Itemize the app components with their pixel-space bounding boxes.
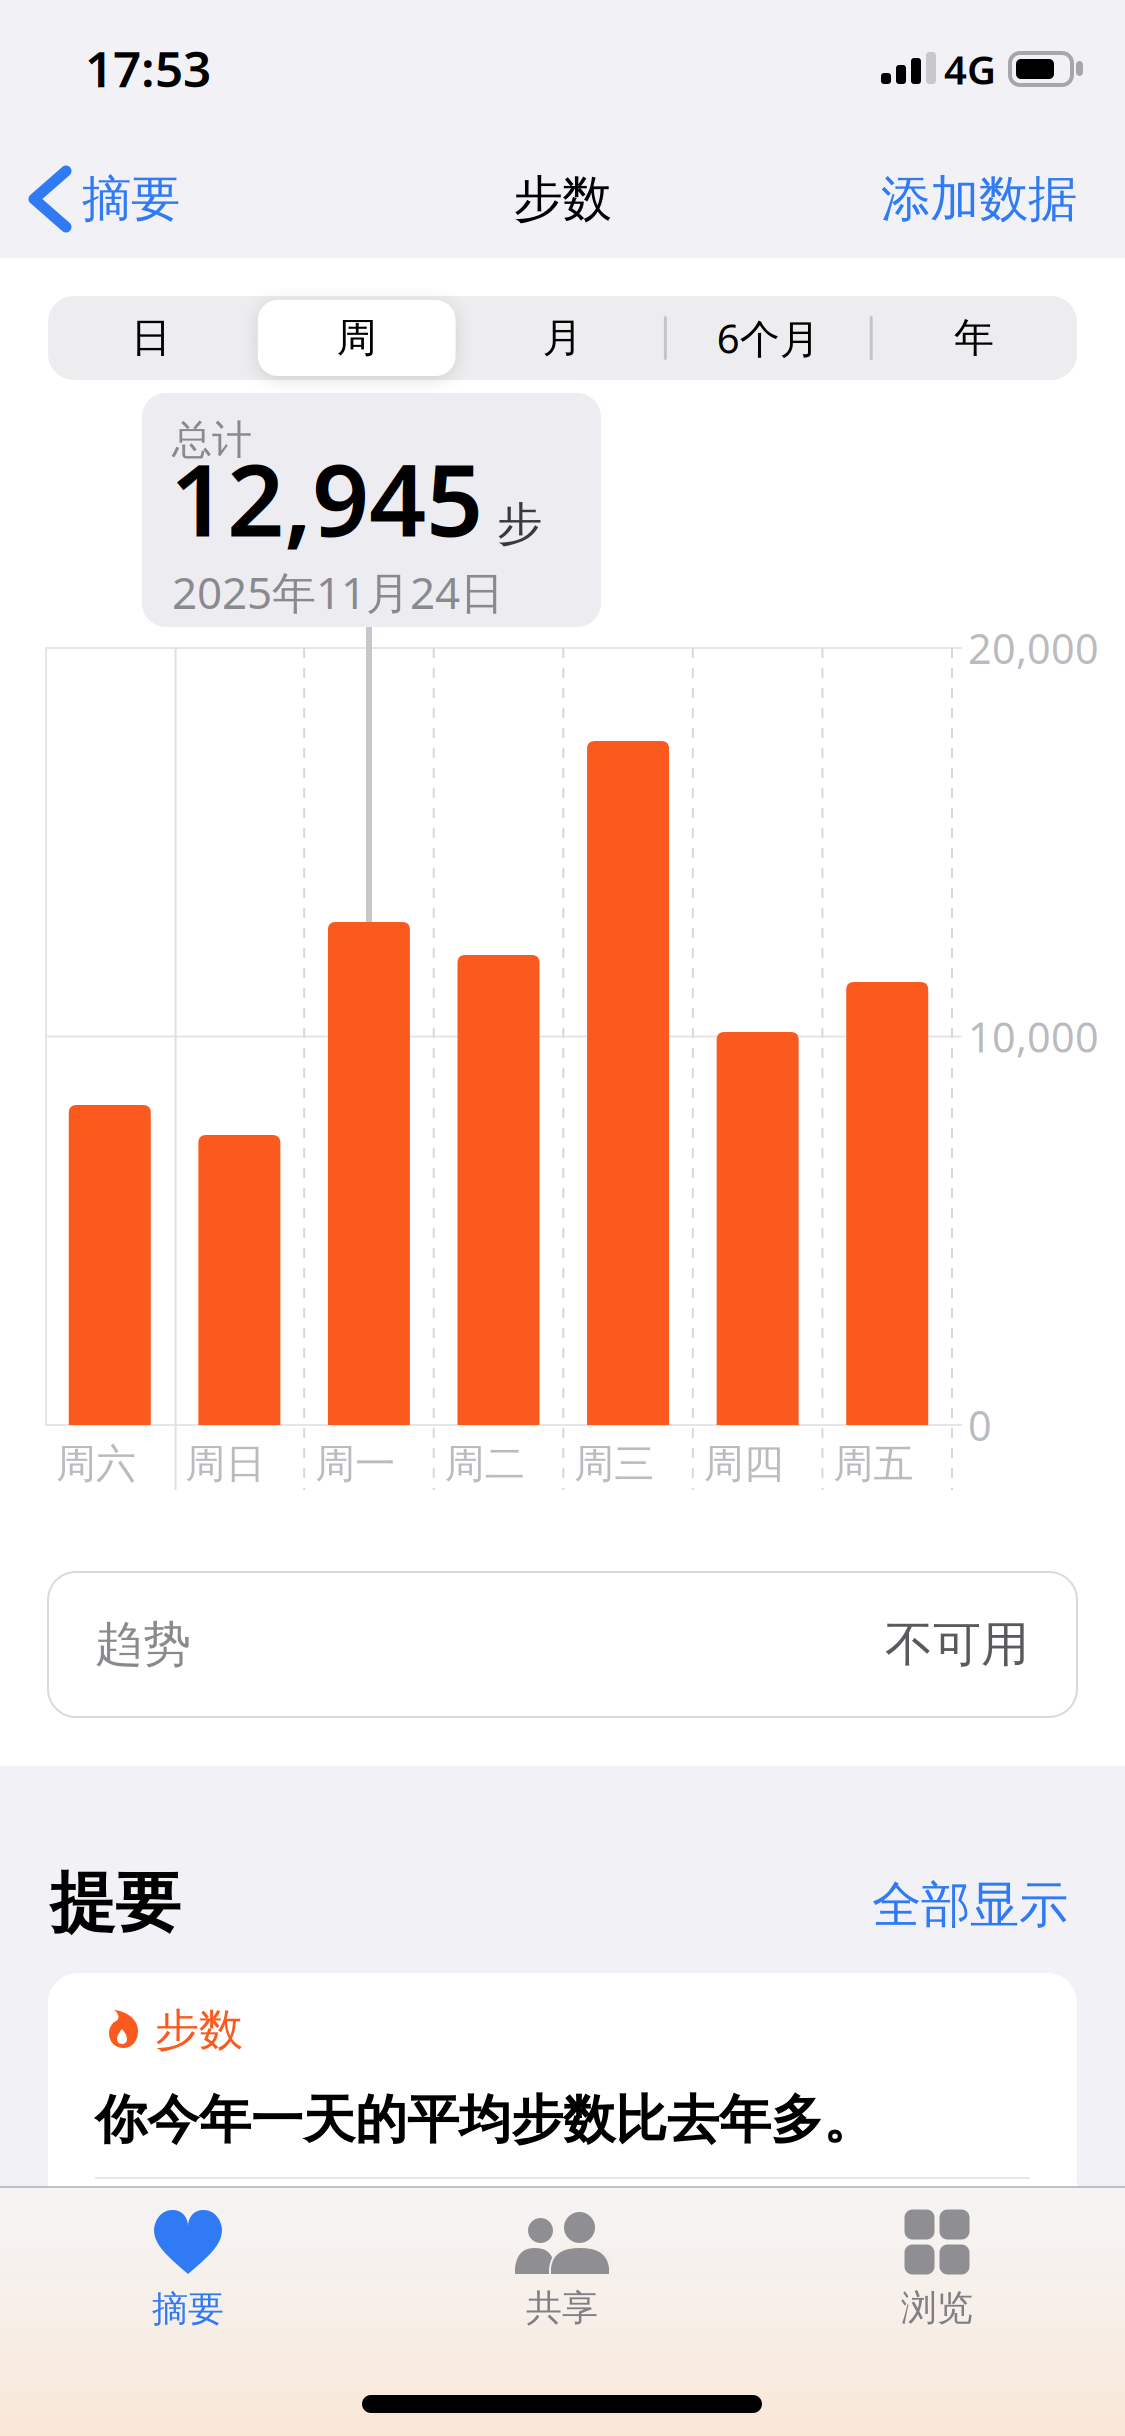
button[interactable]: 月	[460, 296, 665, 380]
staticText: 共享	[526, 2286, 598, 2330]
staticText: 全部显示	[872, 1875, 1068, 1935]
staticText: 步	[497, 496, 542, 552]
button[interactable]: 周	[258, 300, 456, 376]
button[interactable]: 步数	[48, 1973, 1077, 2436]
button[interactable]: 摘要	[34, 168, 180, 230]
staticText: 提要	[50, 1863, 180, 1943]
staticText: 趋势	[95, 1615, 191, 1674]
staticText: 摘要	[82, 169, 180, 229]
button[interactable]: 添加数据	[777, 168, 1077, 230]
staticText: 0	[968, 1398, 992, 1452]
staticText: 12,945	[170, 431, 483, 564]
staticText: 摘要	[152, 2287, 224, 2331]
staticText: 20,000	[968, 621, 1099, 675]
staticText: 不可用	[885, 1615, 1029, 1674]
staticText: 周日	[186, 1439, 266, 1488]
staticText: 添加数据	[881, 169, 1077, 229]
staticText: 6个月	[717, 311, 820, 364]
staticText: 周	[337, 313, 377, 362]
staticText: 周三	[574, 1439, 654, 1488]
staticText: 周四	[704, 1439, 784, 1488]
button[interactable]: 日	[48, 296, 254, 380]
button[interactable]: 趋势	[48, 1572, 1077, 1717]
staticText: 步数	[155, 2003, 243, 2057]
staticText: 总计	[172, 415, 252, 464]
button[interactable]: 6个月	[665, 296, 871, 380]
staticText: 周五	[833, 1439, 913, 1488]
button[interactable]: 共享	[462, 2212, 662, 2340]
staticText: 周二	[445, 1439, 525, 1488]
staticText: 月	[542, 313, 582, 362]
staticText: 10,000	[968, 1009, 1099, 1064]
staticText: 步数	[513, 169, 611, 229]
staticText: 浏览	[901, 2286, 973, 2330]
staticText: 17:53	[85, 35, 211, 101]
button[interactable]: 浏览	[837, 2212, 1037, 2340]
staticText: 周一	[315, 1439, 395, 1488]
button[interactable]: 年	[871, 296, 1077, 380]
staticText: 日	[131, 313, 171, 362]
button[interactable]: 全部显示	[758, 1874, 1068, 1936]
staticText: 4G	[944, 42, 996, 95]
staticText: 周六	[56, 1439, 136, 1488]
staticText: 你今年一天的平均步数比去年多。	[95, 2088, 875, 2152]
staticText: 年	[954, 313, 994, 362]
button[interactable]: 摘要	[88, 2210, 288, 2338]
staticText: 2025年11月24日	[172, 563, 504, 621]
